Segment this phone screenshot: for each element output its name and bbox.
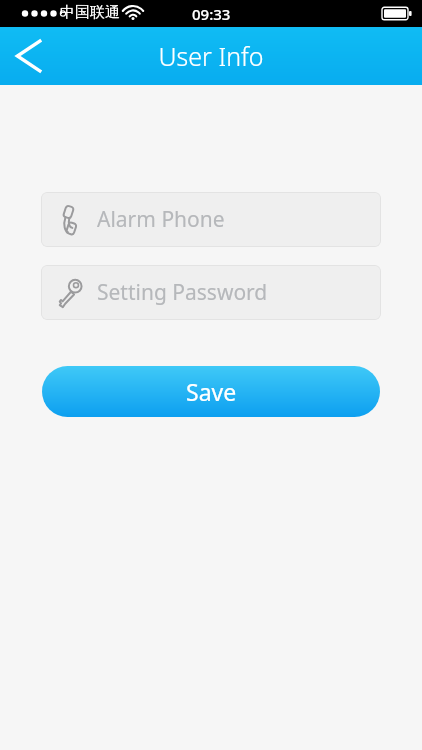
staticText: 中国联通 [60, 3, 120, 22]
button[interactable]: Setting Password [41, 265, 381, 320]
staticText: User Info [158, 39, 264, 73]
button[interactable]: Back [0, 27, 62, 85]
button[interactable]: Save [42, 366, 380, 417]
staticText: Save [186, 376, 237, 407]
button[interactable]: Alarm Phone [41, 192, 381, 247]
staticText: Setting Password [97, 278, 268, 307]
staticText: Alarm Phone [97, 205, 225, 234]
staticText: 09:33 [192, 4, 231, 24]
